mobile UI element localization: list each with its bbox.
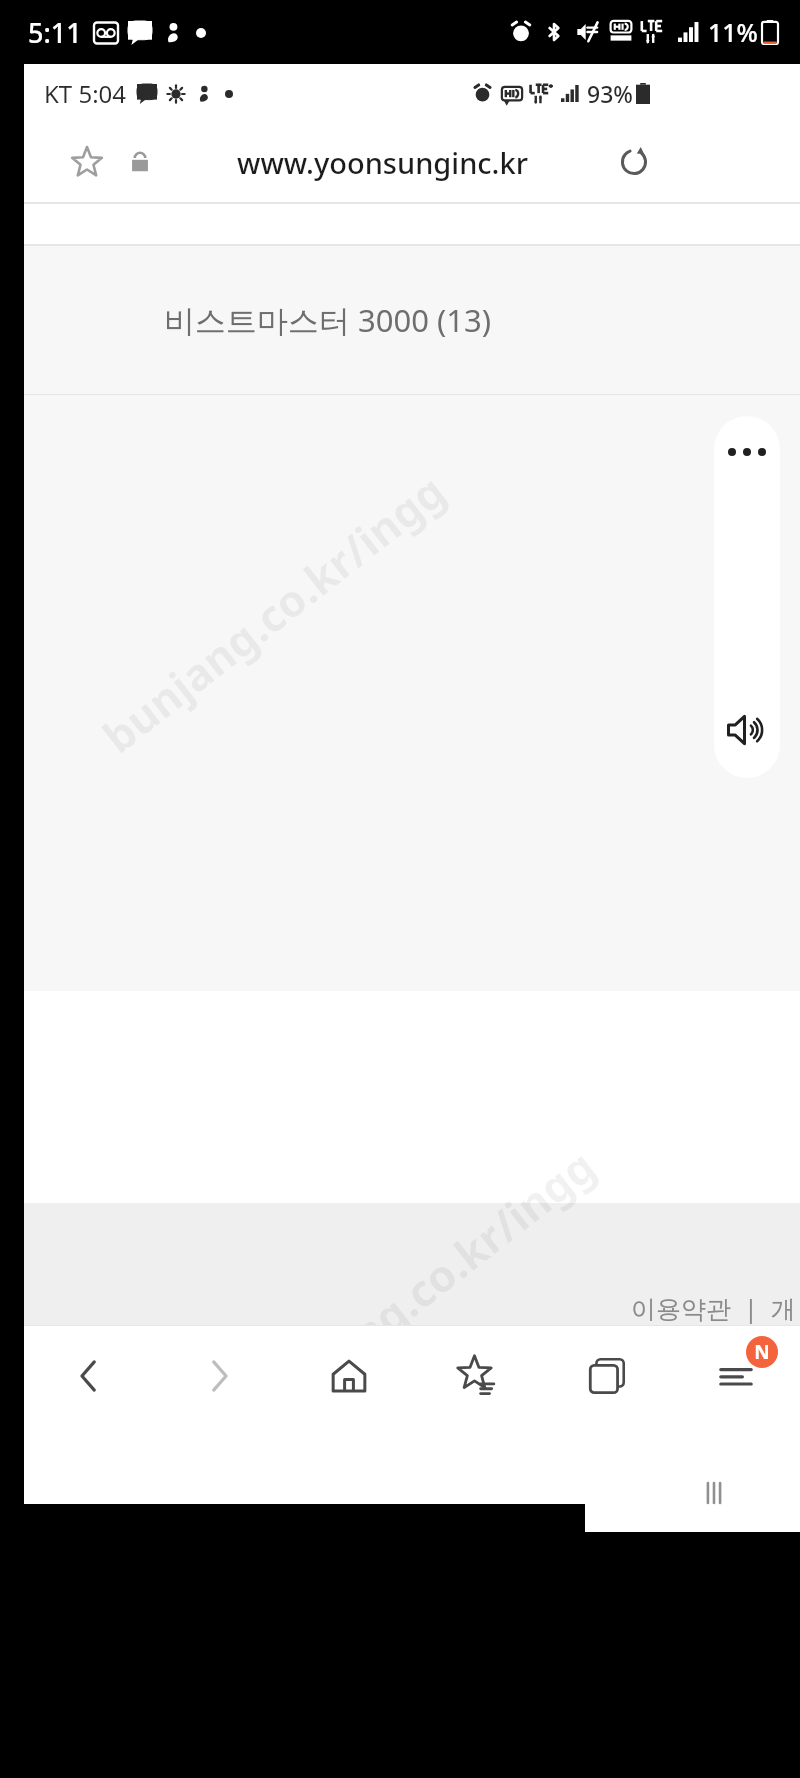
staticText: 비스트마스터 3000 (13): [164, 299, 492, 341]
button[interactable]: Bookmark: [64, 139, 110, 185]
staticText: bunjang.co.kr/ingg: [240, 1135, 607, 1441]
button[interactable]: Media controls: [714, 416, 780, 778]
button[interactable]: 비스트마스터 3000 (13): [24, 246, 800, 394]
button[interactable]: Forward: [181, 1338, 257, 1414]
button[interactable]: Tabs: [569, 1338, 645, 1414]
staticText: 5:11: [28, 14, 82, 51]
button[interactable]: Secure connection: [120, 142, 160, 182]
button[interactable]: Reload: [608, 136, 660, 188]
button[interactable]: Back: [631, 1426, 711, 1504]
button[interactable]: Back: [51, 1338, 127, 1414]
staticText: 이용약관 | 개: [631, 1291, 796, 1325]
button[interactable]: www.yoonsunginc.kr: [229, 137, 536, 188]
staticText: KT 5:04: [44, 77, 127, 110]
staticText: www.yoonsunginc.kr: [237, 143, 528, 182]
button[interactable]: Menu: [698, 1338, 774, 1414]
staticText: 93%: [587, 78, 633, 109]
button[interactable]: Bookmarks: [440, 1338, 516, 1414]
button[interactable]: Home: [311, 1338, 387, 1414]
staticText: 11%: [708, 15, 758, 49]
staticText: N: [754, 1339, 770, 1365]
